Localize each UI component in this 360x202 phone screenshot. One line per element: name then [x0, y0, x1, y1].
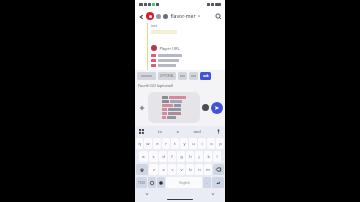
staticText: unit	[203, 74, 209, 78]
staticText: .	[206, 180, 208, 185]
staticText: v	[180, 167, 183, 173]
button[interactable]: unit	[200, 72, 211, 80]
button[interactable]: p	[216, 138, 224, 149]
button[interactable]: l	[213, 151, 221, 162]
staticText: Player URL	[159, 46, 180, 51]
staticText: r	[165, 141, 167, 147]
button[interactable]: h	[186, 151, 194, 162]
staticText: n	[198, 167, 201, 173]
button[interactable]: z	[149, 164, 158, 175]
button[interactable]: d	[159, 151, 167, 162]
button[interactable]: n	[195, 164, 203, 175]
staticText: u	[192, 141, 195, 147]
button[interactable]: ?123	[136, 177, 147, 188]
staticText: k	[207, 154, 210, 160]
staticText: y	[183, 141, 186, 147]
staticText: h	[189, 154, 192, 160]
button[interactable]: Language	[157, 177, 165, 188]
button[interactable]: s	[149, 151, 158, 162]
staticText: d	[162, 154, 165, 160]
staticText: e	[156, 141, 159, 147]
staticText: x	[162, 167, 165, 173]
button[interactable]: r	[162, 138, 170, 149]
button[interactable]: f	[168, 151, 176, 162]
staticText: Fourth GO (optional)	[138, 83, 173, 88]
button[interactable]: Enter	[212, 177, 224, 188]
staticText: ?123	[138, 181, 145, 185]
staticText: i	[201, 141, 203, 147]
button[interactable]: to	[158, 129, 162, 134]
button[interactable]: b	[186, 164, 194, 175]
button[interactable]: v	[177, 164, 185, 175]
button[interactable]: Add attachment	[137, 103, 147, 113]
button[interactable]: Shift	[136, 164, 148, 175]
button[interactable]: u	[189, 138, 197, 149]
button[interactable]: a	[176, 129, 179, 134]
button[interactable]: i	[198, 138, 206, 149]
button[interactable]: Period	[203, 177, 211, 188]
button[interactable]	[148, 92, 200, 123]
button[interactable]: o	[207, 138, 215, 149]
button[interactable]: Send	[211, 102, 223, 114]
button[interactable]: Voice input	[215, 128, 222, 135]
staticText: t	[174, 141, 176, 147]
staticText: OPTIONAL	[160, 74, 174, 78]
button[interactable]: Emoji	[202, 104, 209, 111]
button[interactable]: e	[153, 138, 161, 149]
button[interactable]: k	[204, 151, 212, 162]
staticText: z	[153, 167, 155, 173]
button[interactable]: x	[159, 164, 167, 175]
staticText: flavor-mer	[170, 13, 196, 20]
staticText: p	[219, 141, 222, 147]
button[interactable]	[178, 72, 187, 80]
button[interactable]: g	[177, 151, 185, 162]
button[interactable]: a	[139, 151, 148, 162]
button[interactable]: OPTIONAL	[158, 72, 176, 80]
button[interactable]: Back	[137, 12, 146, 21]
staticText: b	[189, 167, 192, 173]
button[interactable]: w	[144, 138, 152, 149]
button[interactable]: c	[168, 164, 176, 175]
button[interactable]: Search	[213, 11, 223, 21]
button[interactable]: English	[166, 177, 202, 188]
staticText: c	[171, 167, 174, 173]
staticText: g	[180, 154, 183, 160]
staticText: a	[142, 154, 145, 160]
button[interactable]: m	[204, 164, 212, 175]
button[interactable]: Backspace	[213, 164, 224, 175]
staticText: English	[179, 181, 190, 185]
button[interactable]: t	[171, 138, 179, 149]
staticText: l	[216, 154, 218, 160]
button[interactable]: Emoji keyboard	[148, 177, 156, 188]
button[interactable]: q	[136, 138, 143, 149]
staticText: text	[151, 24, 157, 28]
button[interactable]: and	[193, 129, 201, 134]
button[interactable]: j	[195, 151, 203, 162]
staticText: j	[198, 154, 200, 160]
button[interactable]: Keyboard menu	[138, 128, 145, 135]
button[interactable]	[189, 72, 198, 80]
staticText: o	[210, 141, 213, 147]
button[interactable]	[137, 72, 156, 80]
staticText: m	[206, 167, 210, 173]
button[interactable]: y	[180, 138, 188, 149]
staticText: s	[152, 154, 155, 160]
staticText: w	[146, 141, 150, 147]
staticText: f	[171, 154, 173, 160]
staticText: q	[138, 141, 141, 147]
